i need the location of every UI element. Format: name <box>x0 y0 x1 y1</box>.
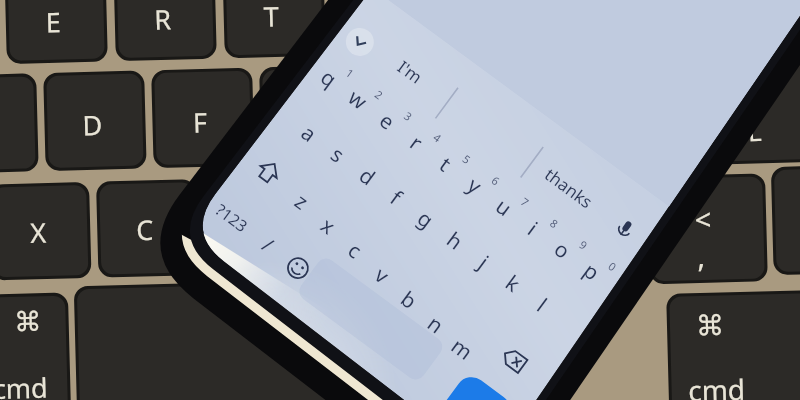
button[interactable]: n <box>418 300 452 350</box>
button[interactable]: l <box>525 280 559 330</box>
button[interactable]: x <box>311 201 345 251</box>
button[interactable]: Voice input <box>608 204 642 254</box>
button[interactable]: o <box>545 225 579 275</box>
button[interactable]: s <box>321 130 355 180</box>
button[interactable]: v <box>365 250 399 300</box>
button[interactable]: Expand suggestions <box>343 17 377 67</box>
button[interactable]: r <box>399 118 433 168</box>
button[interactable]: a <box>292 109 326 159</box>
button[interactable]: Shift <box>251 148 285 198</box>
button[interactable]: I'm <box>380 52 440 92</box>
button[interactable]: h <box>438 216 472 266</box>
button[interactable]: y <box>458 161 492 211</box>
button[interactable]: Slash <box>251 220 285 270</box>
button[interactable]: Backspace <box>497 335 531 385</box>
button[interactable]: k <box>496 259 530 309</box>
button[interactable]: e <box>370 96 404 146</box>
button[interactable]: p <box>574 247 608 297</box>
button[interactable]: w <box>341 75 375 125</box>
button[interactable]: f <box>379 173 413 223</box>
button[interactable]: z <box>285 177 319 227</box>
button[interactable]: m <box>445 324 479 374</box>
button[interactable]: t <box>428 139 462 189</box>
button[interactable]: u <box>487 182 521 232</box>
button[interactable]: Space <box>296 296 446 342</box>
button[interactable]: b <box>392 275 426 325</box>
button[interactable]: Emoji <box>281 243 315 293</box>
button[interactable]: c <box>338 226 372 276</box>
button[interactable]: g <box>408 194 442 244</box>
button[interactable]: thanks <box>534 168 604 208</box>
button[interactable]: d <box>350 151 384 201</box>
button[interactable]: Send <box>446 384 504 400</box>
button[interactable]: Symbols ?123 <box>215 193 249 243</box>
button[interactable]: i <box>516 204 550 254</box>
button[interactable]: q <box>312 53 346 103</box>
button[interactable]: j <box>467 237 501 287</box>
